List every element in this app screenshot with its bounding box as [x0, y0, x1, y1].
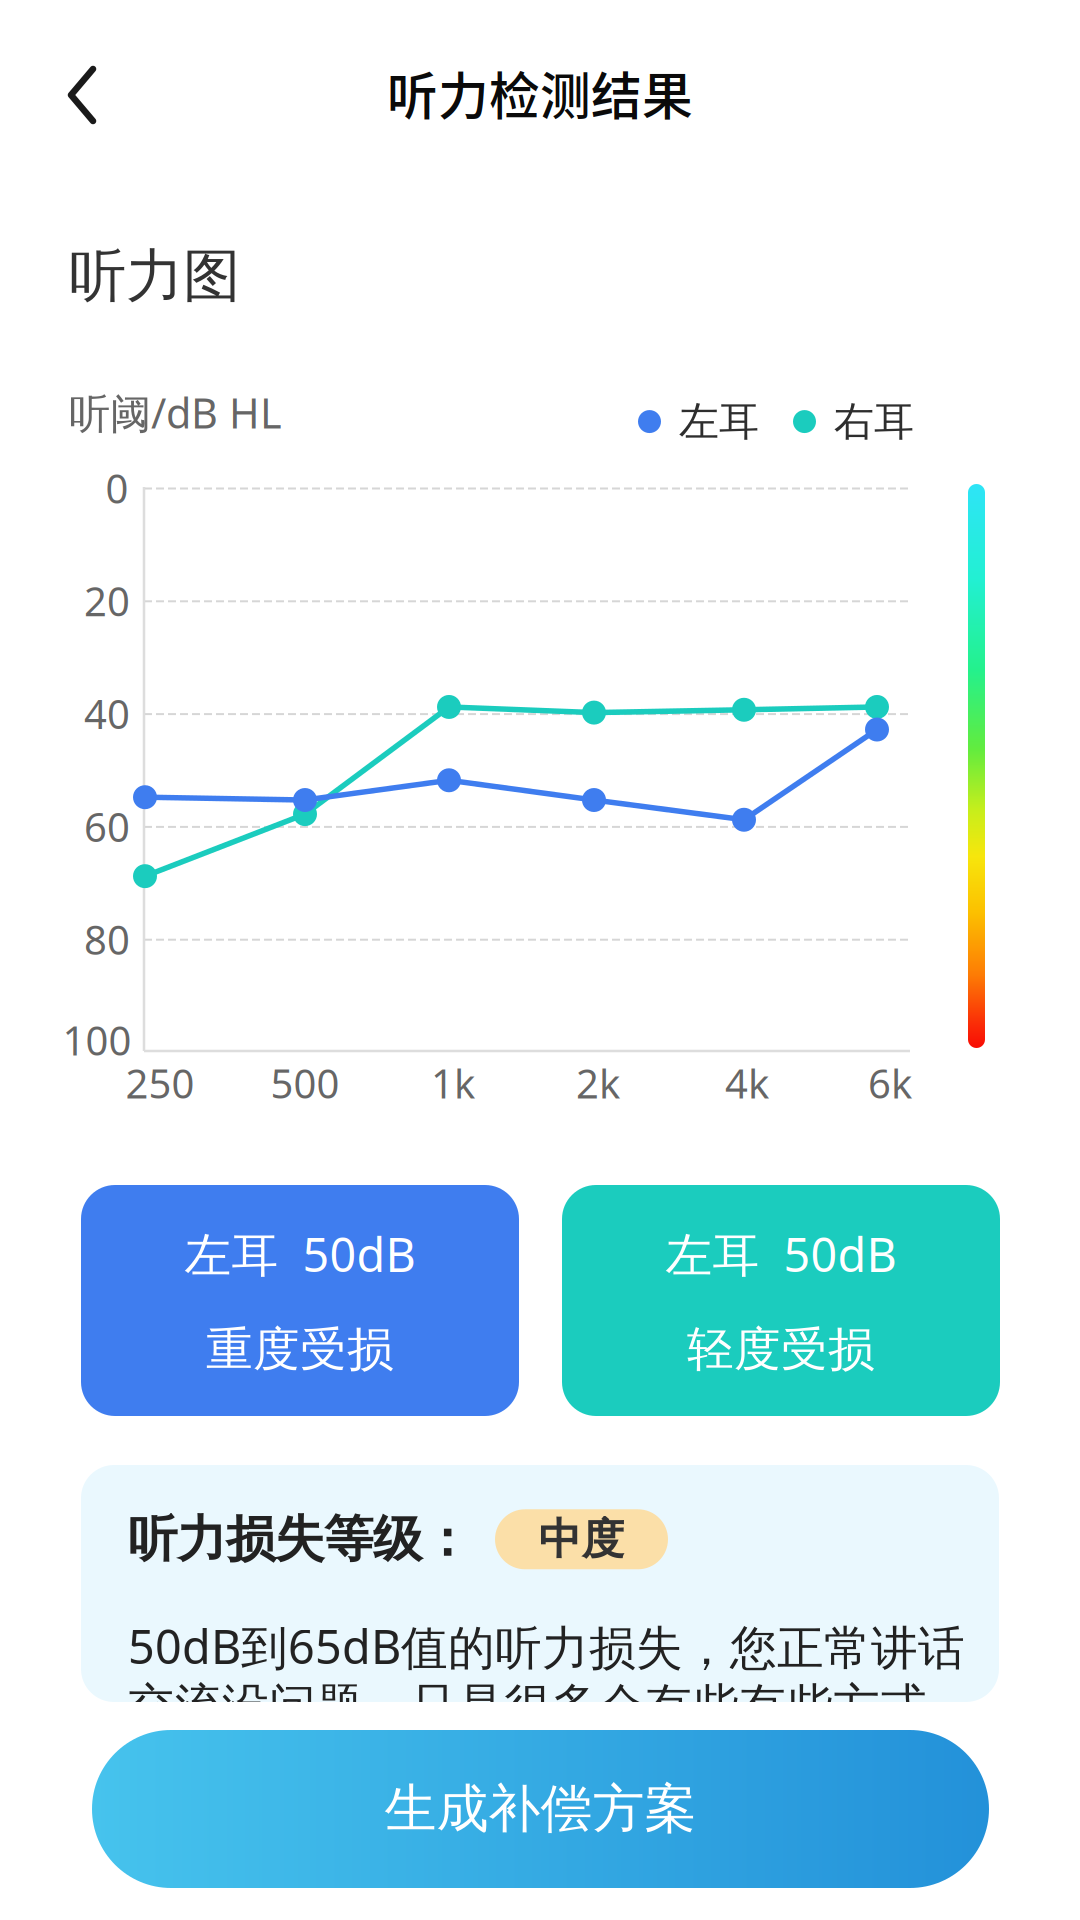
- staticText: 0: [105, 461, 128, 514]
- staticText: 听阈/dB HL: [69, 385, 282, 440]
- staticText: 听力图: [69, 241, 240, 311]
- button[interactable]: 左耳 50dB: [81, 1185, 519, 1416]
- staticText: 80: [84, 913, 130, 966]
- staticText: 左耳: [679, 397, 759, 446]
- staticText: 右耳: [834, 397, 914, 446]
- staticText: 60: [84, 800, 130, 853]
- staticText: 重度受损: [206, 1321, 394, 1378]
- staticText: 50dB到65dB值的听力损失，您正常讲话交流没问题，只是很多会有些有些方式: [128, 1615, 965, 1734]
- staticText: 6k: [868, 1056, 912, 1109]
- staticText: 左耳 50dB: [184, 1223, 415, 1285]
- staticText: 听力损失等级：: [128, 1509, 471, 1570]
- staticText: 2k: [576, 1056, 620, 1109]
- button[interactable]: 生成补偿方案: [92, 1730, 989, 1888]
- button[interactable]: 左耳 50dB: [562, 1185, 1000, 1416]
- button[interactable]: Back: [31, 35, 135, 155]
- staticText: 40: [84, 687, 130, 740]
- staticText: 生成补偿方案: [384, 1777, 696, 1841]
- staticText: 20: [84, 574, 130, 627]
- staticText: 4k: [725, 1056, 769, 1109]
- staticText: 100: [62, 1013, 131, 1066]
- staticText: 左耳 50dB: [665, 1223, 896, 1285]
- staticText: 500: [270, 1056, 339, 1109]
- staticText: 中度: [538, 1513, 624, 1565]
- staticText: 250: [125, 1056, 194, 1109]
- staticText: 轻度受损: [687, 1321, 875, 1378]
- staticText: 听力检测结果: [387, 56, 693, 130]
- staticText: 1k: [431, 1056, 475, 1109]
